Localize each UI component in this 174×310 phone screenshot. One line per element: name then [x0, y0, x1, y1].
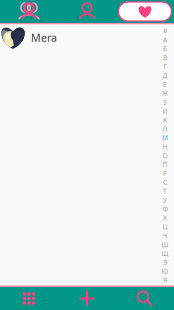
- staticText: Н: [162, 142, 167, 151]
- staticText: Б: [163, 44, 167, 53]
- staticText: М: [162, 133, 168, 142]
- staticText: У: [163, 196, 167, 204]
- button[interactable]: Groups: [0, 0, 58, 23]
- staticText: Ю: [161, 267, 168, 276]
- staticText: Ф: [162, 204, 167, 213]
- button[interactable]: Favourites: [116, 0, 174, 23]
- staticText: Э: [163, 258, 167, 267]
- staticText: Г: [163, 62, 166, 71]
- staticText: И: [162, 107, 167, 115]
- staticText: Д: [162, 71, 167, 80]
- staticText: Х: [163, 213, 167, 222]
- staticText: Щ: [161, 249, 168, 258]
- button[interactable]: Search: [116, 287, 174, 310]
- staticText: В: [163, 53, 167, 62]
- staticText: Т: [163, 187, 167, 196]
- staticText: Ц: [162, 222, 167, 231]
- button[interactable]: Add contact: [58, 287, 116, 310]
- button[interactable]: Contacts: [58, 0, 116, 23]
- staticText: Ч: [163, 231, 167, 240]
- staticText: П: [162, 160, 167, 169]
- staticText: С: [163, 178, 167, 187]
- staticText: Mera: [31, 30, 57, 45]
- staticText: К: [163, 115, 167, 124]
- button[interactable]: Mera: [0, 24, 174, 50]
- staticText: Я: [163, 276, 167, 285]
- staticText: Ж: [162, 89, 168, 98]
- staticText: Е: [163, 80, 167, 89]
- staticText: О: [162, 151, 167, 160]
- button[interactable]: Keypad: [0, 287, 58, 310]
- staticText: А: [163, 35, 167, 44]
- staticText: Л: [162, 124, 167, 133]
- staticText: #: [163, 26, 167, 35]
- staticText: Ш: [161, 240, 168, 249]
- staticText: Р: [163, 169, 167, 178]
- staticText: З: [163, 98, 167, 107]
